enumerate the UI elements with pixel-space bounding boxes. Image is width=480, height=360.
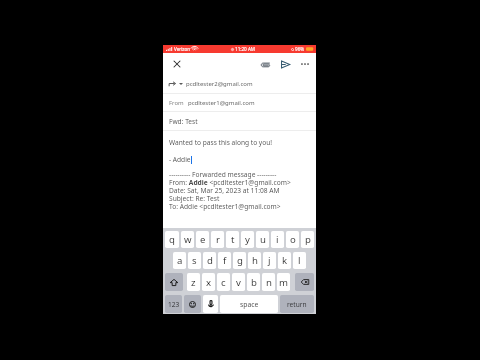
staticText: l (298, 254, 301, 267)
staticText: ---------- Forwarded message --------- F… (169, 170, 291, 211)
button[interactable]: Dictation (203, 295, 218, 313)
staticText: j (268, 254, 271, 267)
staticText: p (305, 233, 311, 246)
button[interactable]: g (233, 252, 246, 269)
staticText: Verizon (174, 46, 191, 52)
staticText: q (169, 233, 175, 246)
button[interactable]: b (247, 273, 260, 291)
staticText: space (240, 300, 259, 309)
staticText: 11:20 AM (235, 46, 256, 52)
button[interactable]: j (263, 252, 276, 269)
staticText: e (200, 233, 206, 246)
button[interactable]: t (226, 231, 239, 248)
staticText: x (206, 276, 212, 289)
staticText: w (184, 233, 192, 246)
staticText: h (252, 254, 258, 267)
button[interactable]: e (196, 231, 209, 248)
staticText: a (177, 254, 183, 267)
button[interactable]: q (165, 231, 179, 248)
button[interactable]: Emoji (184, 295, 201, 313)
button[interactable]: d (203, 252, 216, 269)
button[interactable]: o (286, 231, 299, 248)
button[interactable]: More options (295, 54, 315, 74)
button[interactable]: From (163, 94, 316, 111)
button[interactable]: c (217, 273, 230, 291)
staticText: k (282, 254, 288, 267)
button[interactable]: u (256, 231, 269, 248)
button[interactable]: s (188, 252, 201, 269)
staticText: r (216, 233, 220, 246)
button[interactable]: Attach file (255, 54, 275, 74)
button[interactable]: f (218, 252, 231, 269)
staticText: d (207, 254, 213, 267)
button[interactable]: l (293, 252, 306, 269)
staticText: i (276, 233, 279, 246)
staticText: pcdltester2@gmail.com (186, 80, 253, 88)
button[interactable]: p (301, 231, 314, 248)
button[interactable]: r (211, 231, 224, 248)
button[interactable]: Fwd: Test (163, 112, 316, 130)
staticText: y (245, 233, 250, 246)
button[interactable]: n (262, 273, 275, 291)
staticText: z (191, 276, 196, 289)
button[interactable]: Close (166, 53, 188, 74)
staticText: c (221, 276, 226, 289)
staticText: 96% (295, 46, 305, 52)
button[interactable]: pcdltester2@gmail.com (163, 74, 316, 93)
button[interactable]: space (220, 295, 278, 313)
button[interactable]: h (248, 252, 261, 269)
staticText: g (237, 254, 243, 267)
button[interactable]: v (232, 273, 245, 291)
button[interactable]: Backspace (295, 273, 314, 291)
staticText: Wanted to pass this along to you! (169, 138, 273, 147)
staticText: pcdltester1@gmail.com (188, 99, 255, 107)
button[interactable]: z (187, 273, 200, 291)
button[interactable]: k (278, 252, 291, 269)
button[interactable]: a (173, 252, 186, 269)
staticText: Fwd: Test (169, 117, 198, 126)
button[interactable]: x (202, 273, 215, 291)
staticText: o (290, 233, 296, 246)
staticText: From (169, 99, 184, 107)
staticText: return (287, 300, 307, 309)
staticText: f (223, 254, 227, 267)
staticText: - Addie (169, 155, 191, 164)
staticText: v (236, 276, 241, 289)
staticText: b (251, 276, 257, 289)
button[interactable]: y (241, 231, 254, 248)
staticText: m (279, 276, 288, 289)
button[interactable]: w (181, 231, 194, 248)
button[interactable]: i (271, 231, 284, 248)
button[interactable]: Shift (165, 273, 183, 291)
staticText: n (266, 276, 272, 289)
staticText: s (192, 254, 197, 267)
button[interactable]: 123 (165, 295, 182, 313)
staticText: t (231, 233, 235, 246)
button[interactable]: return (280, 295, 314, 313)
staticText: u (260, 233, 266, 246)
button[interactable]: m (277, 273, 290, 291)
button[interactable]: Send (275, 54, 295, 74)
staticText: 123 (168, 300, 180, 309)
